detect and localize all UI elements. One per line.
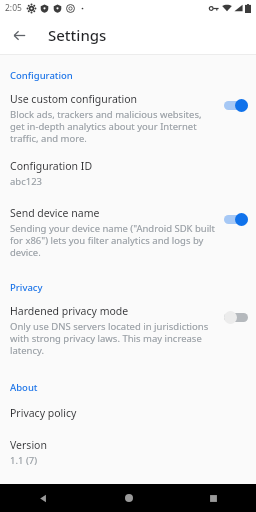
staticText: Privacy policy (10, 406, 77, 420)
button[interactable]: Home (86, 484, 171, 512)
staticText: Hardened privacy mode (10, 304, 129, 318)
button[interactable]: Send device name (0, 206, 256, 259)
button[interactable]: Privacy policy (0, 406, 256, 420)
staticText: 1.1 (7) (10, 454, 38, 467)
staticText: Only use DNS servers located in jurisdic… (10, 320, 216, 357)
button[interactable]: Configuration ID (0, 159, 256, 188)
staticText: Privacy (10, 281, 43, 294)
staticText: abc123 (10, 175, 43, 188)
staticText: Send device name (10, 206, 100, 220)
staticText: Configuration (10, 69, 73, 82)
button[interactable]: Back (0, 484, 86, 512)
staticText: Configuration ID (10, 159, 93, 173)
staticText: Sending your device name ("Android SDK b… (10, 222, 216, 259)
button[interactable]: Use custom configuration (0, 92, 256, 145)
button[interactable]: Recent apps (171, 484, 256, 512)
staticText: 2:05 (5, 2, 22, 14)
staticText: Block ads, trackers and malicious websit… (10, 108, 216, 145)
button[interactable]: Hardened privacy mode (0, 304, 256, 357)
staticText: About (10, 381, 38, 394)
staticText: Use custom configuration (10, 92, 138, 106)
button[interactable]: Version (0, 438, 256, 467)
staticText: Settings (48, 25, 107, 45)
staticText: Version (10, 438, 47, 452)
button[interactable]: Back (0, 16, 38, 54)
